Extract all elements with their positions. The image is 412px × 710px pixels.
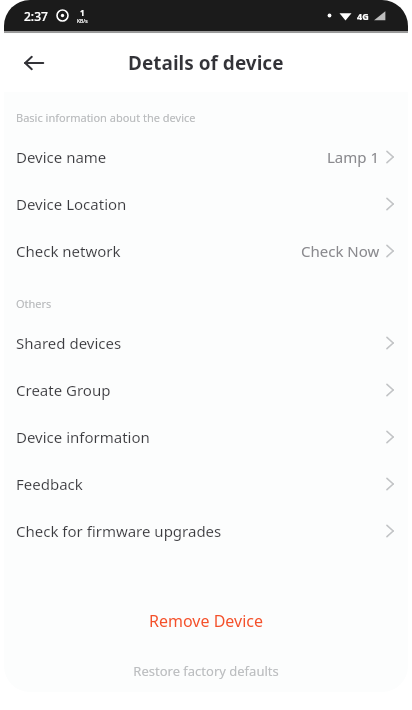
button[interactable]: Device Location [4,180,408,227]
staticText: Check network [16,241,121,261]
staticText: Restore factory defaults [133,662,279,680]
staticText: Create Group [16,380,111,400]
staticText: 4G [357,10,369,22]
button[interactable]: Create Group [4,366,408,413]
button[interactable]: Check network [4,227,408,274]
button[interactable]: Shared devices [4,319,408,366]
staticText: Remove Device [149,610,263,632]
button[interactable]: Device name [4,133,408,180]
staticText: Details of device [128,50,284,76]
staticText: Device Location [16,194,127,214]
staticText: KB/s [77,18,88,25]
button[interactable]: Back [12,41,56,85]
staticText: 2:37 [24,8,48,24]
staticText: Check for firmware upgrades [16,521,222,541]
staticText: Basic information about the device [16,110,196,125]
button[interactable]: Feedback [4,460,408,507]
button[interactable]: Check for firmware upgrades [4,507,408,554]
staticText: Device information [16,427,150,447]
staticText: Shared devices [16,333,122,353]
staticText: Lamp 1 [327,147,380,167]
button[interactable]: Remove Device [4,604,408,638]
staticText: Device name [16,147,107,167]
button[interactable]: Device information [4,413,408,460]
staticText: 1 [80,7,85,18]
staticText: Others [16,296,52,311]
button[interactable]: Restore factory defaults [4,656,408,686]
staticText: Check Now [301,241,380,261]
staticText: Feedback [16,474,83,494]
